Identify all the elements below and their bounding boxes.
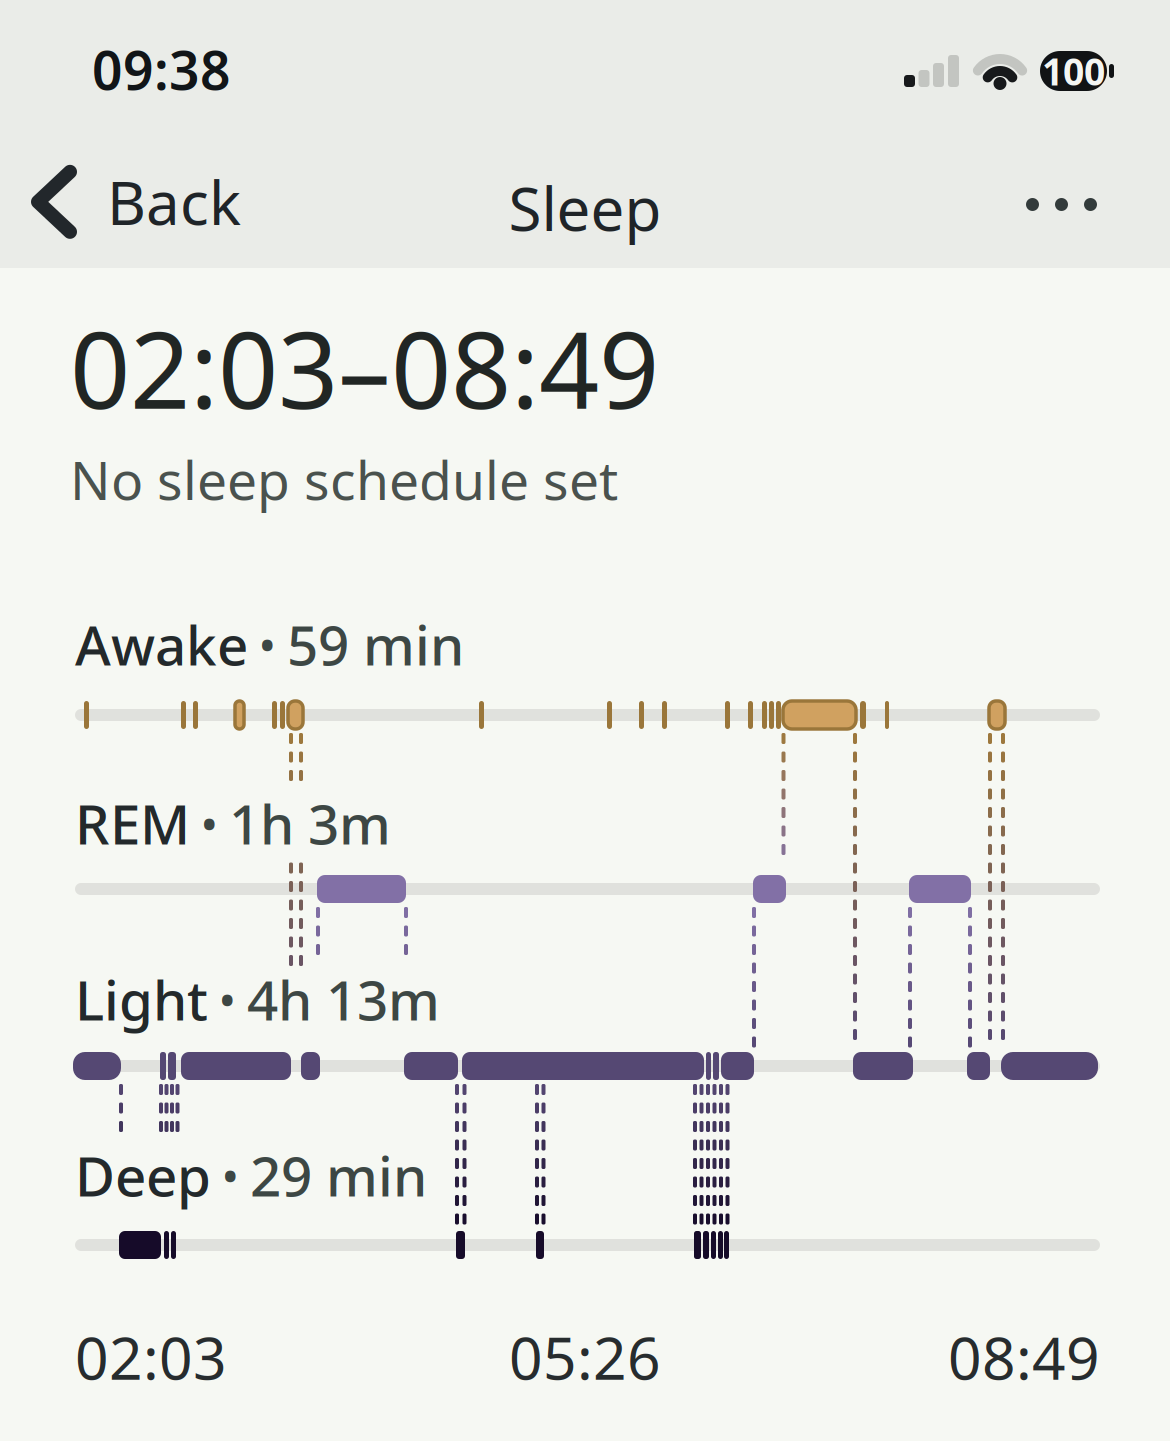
staticText: 09:38 [92, 34, 231, 105]
staticText: No sleep schedule set [70, 444, 618, 515]
staticText: 59 min [287, 608, 464, 681]
button[interactable] [1012, 184, 1111, 225]
staticText: Deep [75, 1139, 211, 1212]
button[interactable]: Back [30, 162, 241, 242]
staticText: • [248, 615, 287, 673]
staticText: Back [107, 162, 241, 242]
staticText: Sleep [508, 168, 661, 248]
staticText: 1h 3m [229, 787, 391, 860]
staticText: REM [75, 787, 190, 860]
staticText: Light [75, 963, 208, 1036]
staticText: 02:03–08:49 [70, 298, 659, 438]
staticText: • [208, 970, 247, 1028]
staticText: • [211, 1146, 250, 1204]
staticText: 4h 13m [247, 963, 440, 1036]
staticText: 08:49 [948, 1318, 1100, 1396]
staticText: Awake [75, 608, 248, 681]
staticText: • [190, 794, 229, 852]
staticText: 02:03 [75, 1318, 227, 1396]
staticText: 29 min [250, 1139, 427, 1212]
staticText: 100 [1042, 46, 1105, 96]
staticText: 05:26 [509, 1318, 661, 1396]
